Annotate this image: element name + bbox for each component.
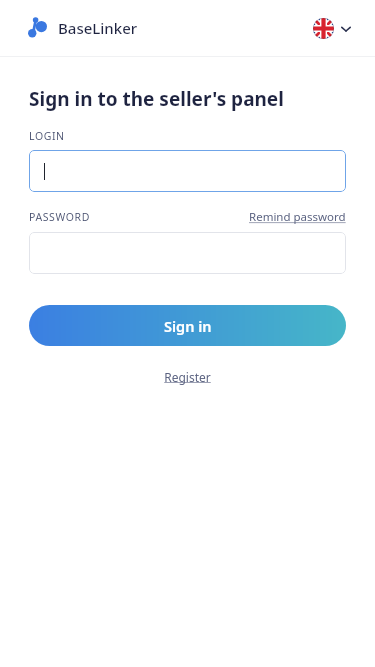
button[interactable]: Sign in <box>29 305 346 346</box>
staticText: Sign in <box>164 316 212 336</box>
staticText: Sign in to the seller's panel <box>29 86 284 112</box>
staticText: Register <box>164 369 211 385</box>
staticText: LOGIN <box>29 129 65 143</box>
button[interactable] <box>29 232 346 274</box>
button[interactable]: Change language <box>309 14 355 43</box>
button[interactable]: Remind password <box>249 209 346 225</box>
button[interactable] <box>29 150 346 192</box>
staticText: Remind password <box>249 209 346 225</box>
staticText: PASSWORD <box>29 210 90 224</box>
button[interactable]: BaseLinker <box>26 16 138 40</box>
button[interactable]: Register <box>160 365 215 389</box>
staticText: BaseLinker <box>58 18 138 38</box>
